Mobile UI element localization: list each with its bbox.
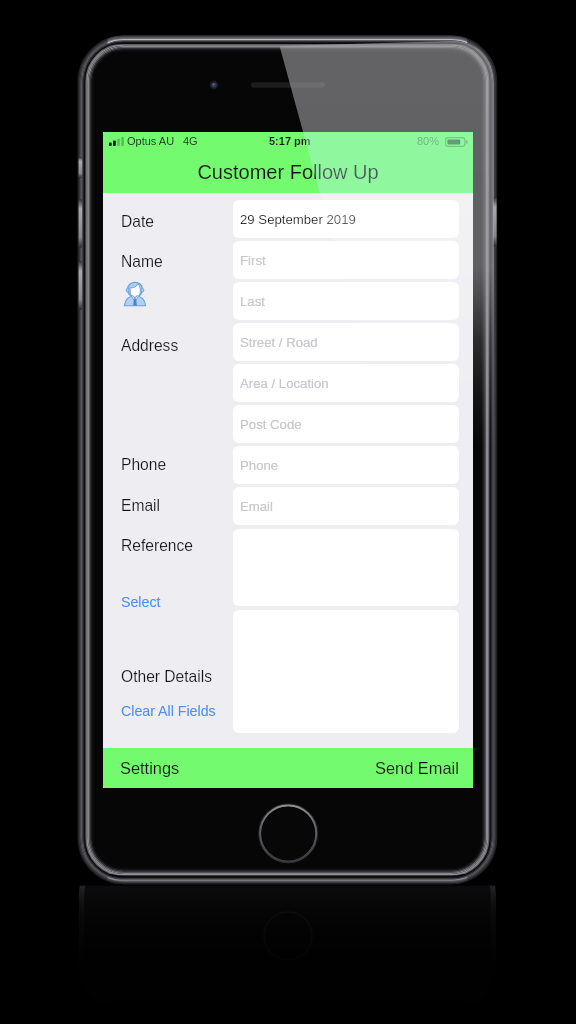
staticText: 5:17 pm (269, 135, 311, 147)
button[interactable]: First (233, 241, 459, 279)
button[interactable]: Street / Road (233, 323, 459, 361)
staticText: Post Code (240, 417, 302, 432)
staticText: 80% (417, 135, 440, 147)
button[interactable]: Settings (103, 748, 188, 788)
staticText: Name (121, 253, 163, 270)
staticText: First (240, 253, 266, 268)
button[interactable]: Post Code (233, 405, 459, 443)
staticText: Clear All Fields (121, 703, 216, 719)
button[interactable]: Area / Location (233, 364, 459, 402)
staticText: Customer Follow Up (103, 161, 473, 183)
button[interactable]: Select (121, 594, 161, 610)
staticText: Phone (240, 458, 279, 473)
staticText: Select (121, 594, 161, 610)
staticText: Address (121, 337, 179, 354)
staticText: Other Details (121, 668, 212, 685)
other: Contact avatar (124, 280, 146, 306)
staticText: Send Email (375, 759, 459, 777)
staticText: Area / Location (240, 376, 329, 391)
staticText: Street / Road (240, 335, 318, 350)
button[interactable]: Email (233, 487, 459, 525)
button[interactable]: 29 September 2019 (233, 200, 459, 238)
staticText: 4G (183, 135, 198, 147)
staticText: Phone (121, 456, 167, 473)
button[interactable]: Send Email (367, 748, 473, 788)
staticText: Reference (121, 537, 193, 554)
staticText: Date (121, 213, 154, 230)
staticText: Email (240, 499, 273, 514)
staticText: Settings (120, 759, 180, 777)
button[interactable]: Phone (233, 446, 459, 484)
staticText: Optus AU (127, 135, 175, 147)
button[interactable]: Clear All Fields (121, 703, 216, 719)
staticText: Last (240, 294, 265, 309)
button[interactable]: Last (233, 282, 459, 320)
staticText: Email (121, 497, 160, 514)
staticText: 29 September 2019 (240, 212, 356, 227)
